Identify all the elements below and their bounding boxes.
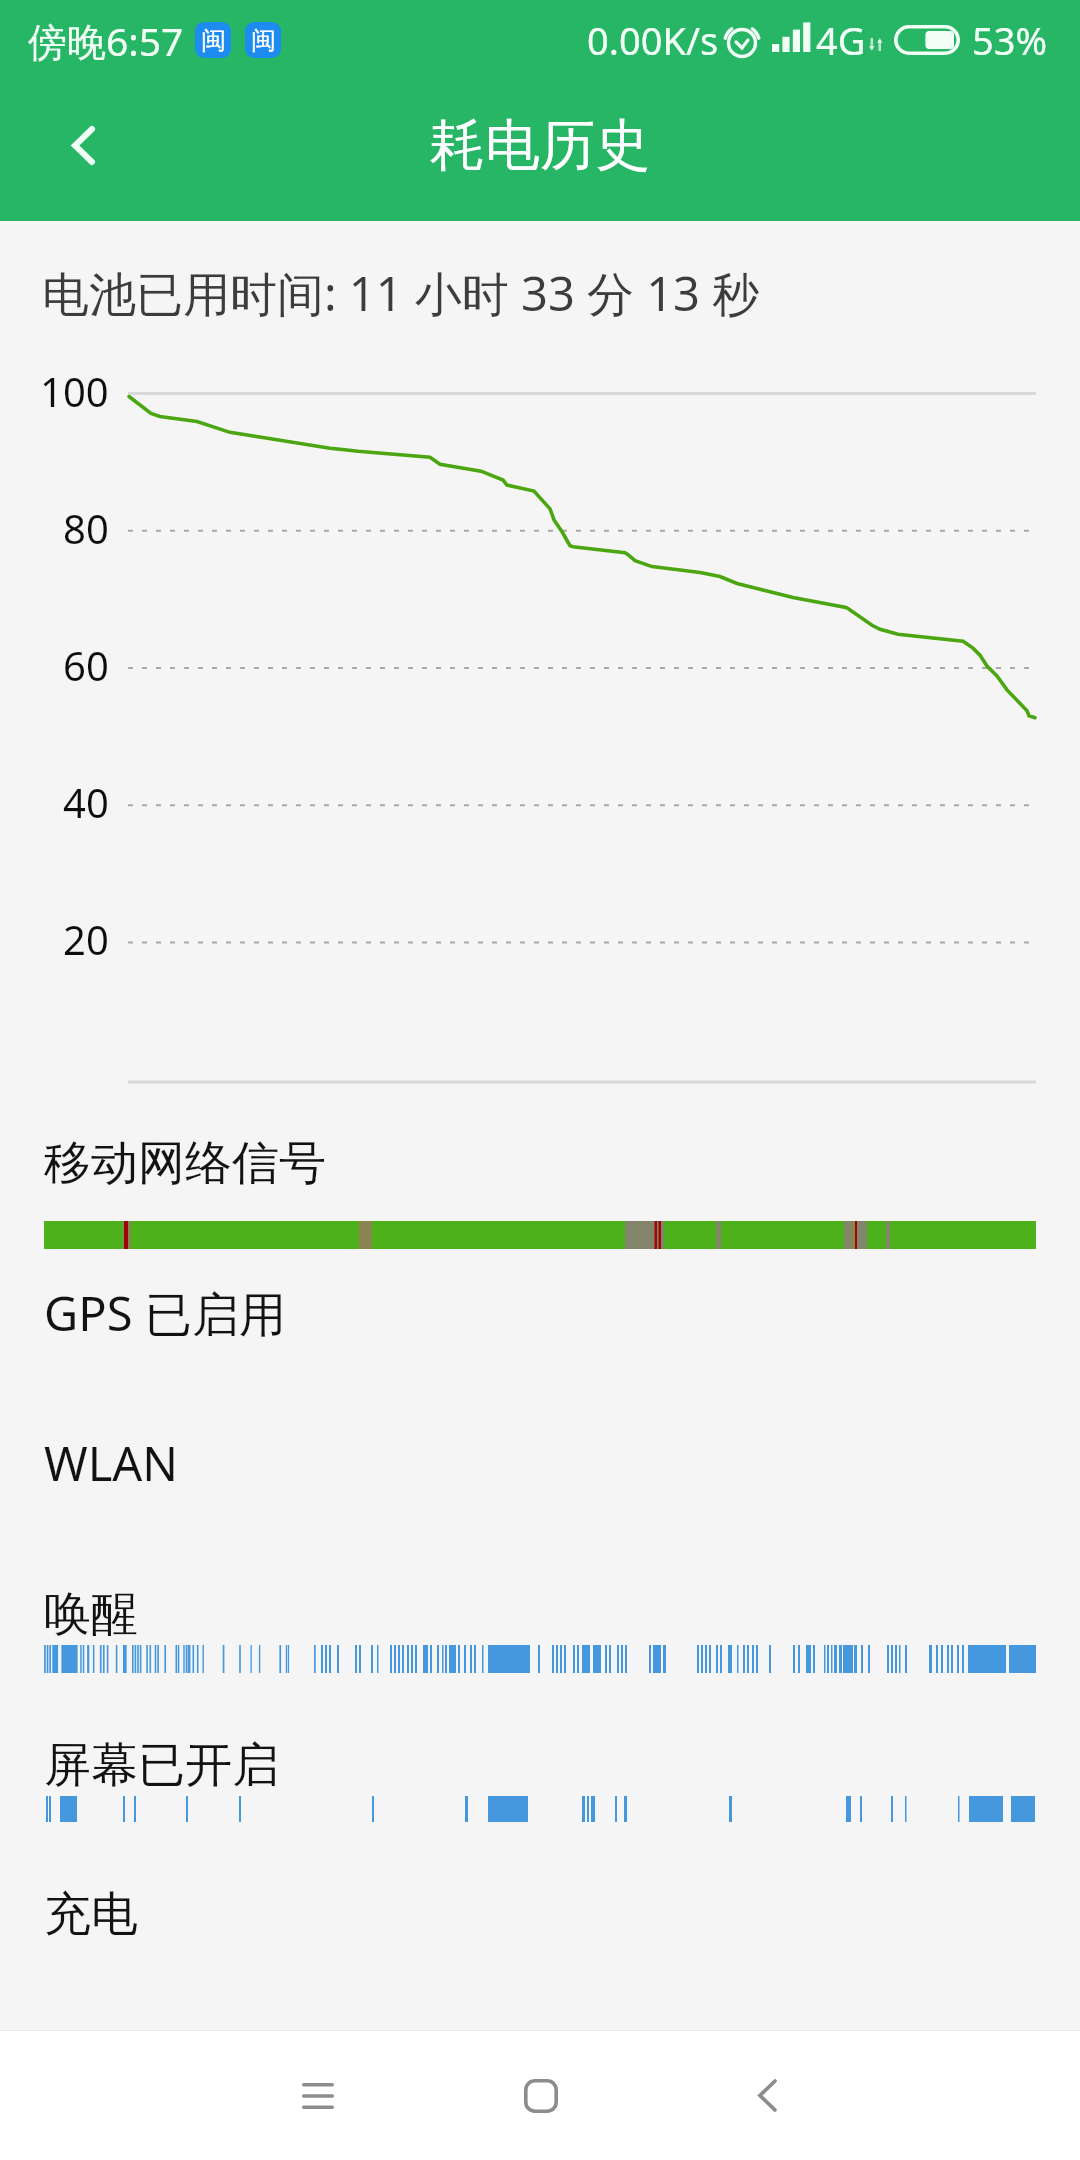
staticText: 闽 <box>201 25 226 56</box>
staticText: WLAN <box>44 1431 179 1495</box>
button[interactable]: Recents <box>207 2031 429 2160</box>
button[interactable]: Back <box>52 121 112 181</box>
staticText: 电池已用时间: 11 小时 33 分 13 秒 <box>42 261 760 325</box>
staticText: 唤醒 <box>44 1585 138 1644</box>
staticText: 移动网络信号 <box>44 1134 326 1193</box>
button[interactable]: Back <box>651 2031 873 2160</box>
button[interactable]: Home <box>429 2031 651 2160</box>
staticText: 20 <box>63 912 109 966</box>
staticText: 4G <box>816 14 866 66</box>
staticText: 40 <box>63 775 109 829</box>
staticText: 80 <box>63 501 109 555</box>
staticText: 闽 <box>251 25 276 56</box>
staticText: 充电 <box>44 1885 138 1944</box>
staticText: 傍晚6:57 <box>28 14 184 67</box>
staticText: GPS 已启用 <box>44 1281 286 1345</box>
staticText: 0.00K/s <box>587 14 719 66</box>
staticText: 100 <box>40 364 109 418</box>
staticText: 屏幕已开启 <box>44 1736 279 1795</box>
staticText: 60 <box>63 638 109 692</box>
staticText: 53% <box>972 14 1048 66</box>
staticText: 耗电历史 <box>430 111 650 180</box>
